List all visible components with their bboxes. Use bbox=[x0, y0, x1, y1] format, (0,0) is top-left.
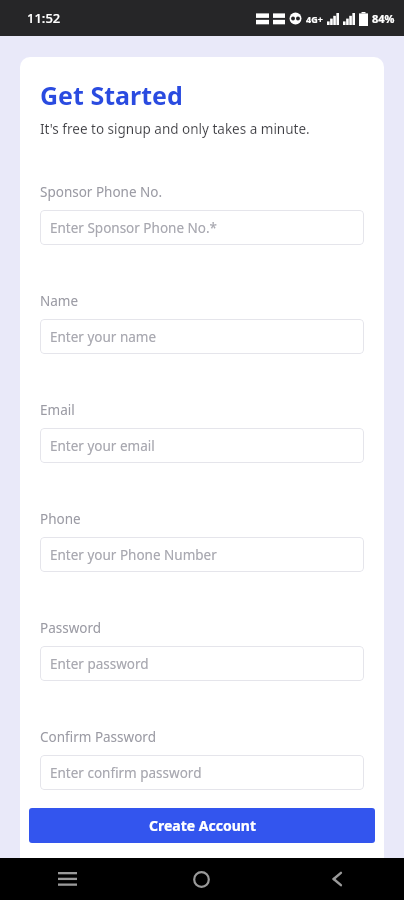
staticText: Email bbox=[40, 401, 75, 419]
staticText: Enter confirm password bbox=[50, 764, 202, 782]
button[interactable]: Enter your Phone Number bbox=[40, 537, 364, 572]
staticText: Name bbox=[40, 292, 79, 310]
button[interactable]: Enter confirm password bbox=[40, 755, 364, 790]
button[interactable]: Back bbox=[269, 858, 404, 900]
staticText: Phone bbox=[40, 510, 81, 528]
staticText: 4G+ bbox=[306, 13, 323, 25]
staticText: Enter your email bbox=[50, 437, 155, 455]
staticText: Password bbox=[40, 619, 102, 637]
staticText: Enter your Phone Number bbox=[50, 546, 217, 564]
button[interactable]: Enter password bbox=[40, 646, 364, 681]
staticText: Sponsor Phone No. bbox=[40, 183, 163, 201]
button[interactable]: Enter your email bbox=[40, 428, 364, 463]
button[interactable]: Enter your name bbox=[40, 319, 364, 354]
staticText: Enter password bbox=[50, 655, 149, 673]
button[interactable]: Create Account bbox=[29, 808, 375, 843]
staticText: Enter your name bbox=[50, 328, 157, 346]
staticText: Create Account bbox=[149, 816, 256, 835]
staticText: Get Started bbox=[40, 78, 183, 112]
staticText: It's free to signup and only takes a min… bbox=[40, 120, 310, 138]
staticText: 11:52 bbox=[27, 9, 61, 27]
button[interactable]: Enter Sponsor Phone No.* bbox=[40, 210, 364, 245]
staticText: 84% bbox=[372, 11, 395, 26]
button[interactable]: Recent apps bbox=[0, 858, 134, 900]
button[interactable]: Home bbox=[134, 858, 269, 900]
staticText: Enter Sponsor Phone No.* bbox=[50, 219, 217, 237]
staticText: Confirm Password bbox=[40, 728, 156, 746]
